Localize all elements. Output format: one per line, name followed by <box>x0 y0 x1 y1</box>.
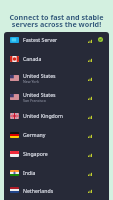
button[interactable]: United Kingdom <box>4 106 109 125</box>
button[interactable]: United States <box>4 87 109 106</box>
staticText: San Francisco <box>23 98 46 103</box>
button[interactable]: Germany <box>4 125 109 144</box>
staticText: United States <box>23 72 56 79</box>
staticText: Singapore <box>23 150 48 157</box>
staticText: Connect to fast and stable servers acros… <box>0 12 113 29</box>
button[interactable]: Netherlands <box>4 182 109 198</box>
button[interactable]: United States <box>4 68 109 87</box>
button[interactable]: Canada <box>4 49 109 68</box>
staticText: Netherlands <box>23 187 54 194</box>
staticText: New York <box>23 79 39 84</box>
staticText: Canada <box>23 55 42 62</box>
staticText: United States <box>23 91 56 98</box>
staticText: United Kingdom <box>23 112 63 119</box>
staticText: Fastest Server <box>23 36 58 43</box>
button[interactable]: Fastest Server <box>4 32 109 49</box>
button[interactable]: Singapore <box>4 144 109 163</box>
button[interactable]: India <box>4 163 109 182</box>
staticText: India <box>23 169 36 176</box>
staticText: Germany <box>23 131 46 138</box>
